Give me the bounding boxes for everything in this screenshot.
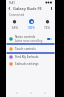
staticText: Active noise cancelling xyxy=(15,39,43,43)
button[interactable]: Earbuds settings xyxy=(6,60,55,68)
staticText: 9:41 xyxy=(9,1,15,5)
button[interactable]: Home xyxy=(27,89,34,96)
staticText: 65% xyxy=(12,26,18,30)
staticText: Galaxy Buds FE xyxy=(13,6,42,11)
staticText: Find My Earbuds xyxy=(15,55,39,59)
staticText: 100% xyxy=(27,26,35,30)
button[interactable]: Noise controls xyxy=(6,35,55,43)
staticText: Earbuds settings xyxy=(15,62,39,66)
button[interactable]: Recents xyxy=(13,89,20,96)
staticText: 72% xyxy=(44,26,50,30)
button[interactable]: Touch controls xyxy=(6,45,55,53)
button[interactable]: Back xyxy=(41,89,48,96)
button[interactable]: Navigate up xyxy=(6,5,13,12)
staticText: Connected xyxy=(9,13,25,17)
button[interactable]: More options xyxy=(48,5,55,12)
staticText: Noise controls xyxy=(15,35,36,39)
staticText: Touch controls xyxy=(15,47,36,51)
button[interactable]: Find My Earbuds xyxy=(6,53,55,61)
